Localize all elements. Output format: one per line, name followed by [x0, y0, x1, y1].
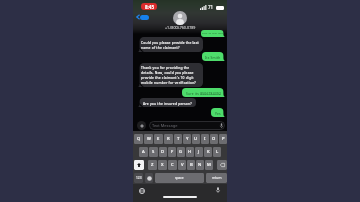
button[interactable]: W [144, 134, 153, 144]
button[interactable]: Add attachment [137, 121, 146, 130]
staticText: P [222, 136, 225, 142]
button[interactable]: U [192, 134, 200, 144]
staticText: Are you the insured person? [143, 101, 192, 105]
button[interactable]: K [204, 147, 212, 157]
staticText: D [161, 149, 165, 155]
staticText: Its Smith [205, 55, 221, 59]
button[interactable]: Are you the insured person? [138, 98, 196, 107]
staticText: W [147, 136, 151, 142]
staticText: S [152, 149, 155, 155]
staticText: Y [186, 136, 189, 142]
button[interactable]: F [168, 147, 176, 157]
staticText: T [177, 136, 180, 142]
staticText: space [175, 176, 184, 180]
button[interactable]: R [164, 134, 173, 144]
staticText: E [157, 136, 160, 142]
button[interactable]: Backspace [217, 160, 227, 170]
staticText: X [161, 162, 164, 168]
staticText: Text Message [152, 123, 178, 128]
button[interactable]: D [159, 147, 167, 157]
button[interactable]: Q [134, 134, 143, 144]
button[interactable]: Contact avatar [173, 11, 187, 25]
staticText: V [181, 162, 184, 168]
staticText: 8:45 [145, 4, 154, 10]
button[interactable]: G [177, 147, 185, 157]
button[interactable]: return [206, 173, 227, 183]
staticText: 71 [208, 4, 214, 10]
staticText: I [204, 136, 206, 142]
staticText: Could you please provide the last name o… [141, 40, 201, 50]
button[interactable]: A [139, 147, 148, 157]
staticText: J [198, 149, 200, 155]
button[interactable]: S [149, 147, 158, 157]
button[interactable]: Z [148, 160, 157, 170]
staticText: A [142, 149, 145, 155]
staticText: Thank you for providing the details. Now… [141, 65, 201, 85]
staticText: N [198, 162, 202, 168]
button[interactable]: space [155, 173, 204, 183]
staticText: return [212, 176, 222, 180]
button[interactable]: Shift [134, 160, 144, 170]
staticText: U [194, 136, 198, 142]
button[interactable]: I [201, 134, 209, 144]
button[interactable]: X [158, 160, 167, 170]
staticText: 123 [136, 176, 142, 180]
staticText: Yes [215, 111, 221, 115]
button[interactable]: V [178, 160, 186, 170]
button[interactable]: Dictate [214, 186, 222, 194]
staticText: R [167, 136, 170, 142]
button[interactable]: Text Message [149, 121, 225, 130]
button[interactable]: P [219, 134, 227, 144]
button[interactable]: Thank you for providing the details. Now… [138, 63, 203, 87]
staticText: Sent as Text Message [202, 32, 223, 35]
button[interactable]: 123 [134, 173, 143, 183]
button[interactable]: H [186, 147, 194, 157]
staticText: C [171, 162, 174, 168]
button[interactable]: Change keyboard [138, 187, 146, 195]
button[interactable]: M [205, 160, 213, 170]
staticText: M [207, 162, 211, 168]
button[interactable]: Could you please provide the last name o… [138, 37, 203, 52]
staticText: O [212, 136, 216, 142]
button[interactable]: Emoji [145, 173, 153, 183]
button[interactable]: Sent as Text Message [201, 30, 225, 37]
staticText: F [171, 149, 174, 155]
staticText: K [207, 149, 210, 155]
button[interactable]: Sure its 8506784392 [182, 88, 225, 97]
staticText: H [188, 149, 192, 155]
button[interactable]: J [195, 147, 203, 157]
button[interactable]: N [196, 160, 204, 170]
button[interactable]: Y [183, 134, 191, 144]
staticText: B [190, 162, 193, 168]
staticText: Q [137, 136, 141, 142]
button[interactable]: T [174, 134, 182, 144]
button[interactable]: E [154, 134, 163, 144]
staticText: L [216, 149, 219, 155]
button[interactable]: B [187, 160, 195, 170]
staticText: Z [151, 162, 154, 168]
staticText: Sure its 8506784392 [186, 91, 221, 95]
button[interactable]: Back [136, 14, 149, 20]
button[interactable]: O [210, 134, 218, 144]
staticText: G [179, 149, 183, 155]
button[interactable]: Yes [211, 108, 225, 117]
staticText: +1-(800)-760-0789 [165, 25, 196, 30]
button[interactable]: L [213, 147, 221, 157]
button[interactable]: C [168, 160, 177, 170]
button[interactable]: Its Smith [202, 52, 225, 61]
